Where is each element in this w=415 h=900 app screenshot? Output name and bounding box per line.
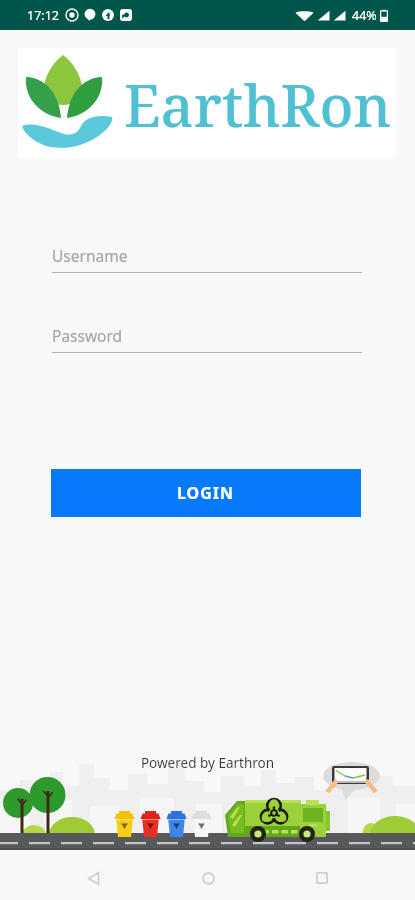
button[interactable]: LOGIN (51, 469, 361, 517)
staticText: EarthRon (124, 65, 392, 144)
staticText: 17:12 (27, 7, 59, 24)
staticText: Powered by Earthron (0, 754, 415, 772)
staticText: LOGIN (177, 482, 235, 504)
staticText: Username (52, 245, 128, 266)
staticText: 44% (352, 7, 377, 24)
button[interactable]: Recent apps (300, 856, 344, 900)
staticText: Password (52, 325, 123, 346)
button[interactable]: Home (186, 856, 230, 900)
button[interactable]: Back (71, 856, 115, 900)
